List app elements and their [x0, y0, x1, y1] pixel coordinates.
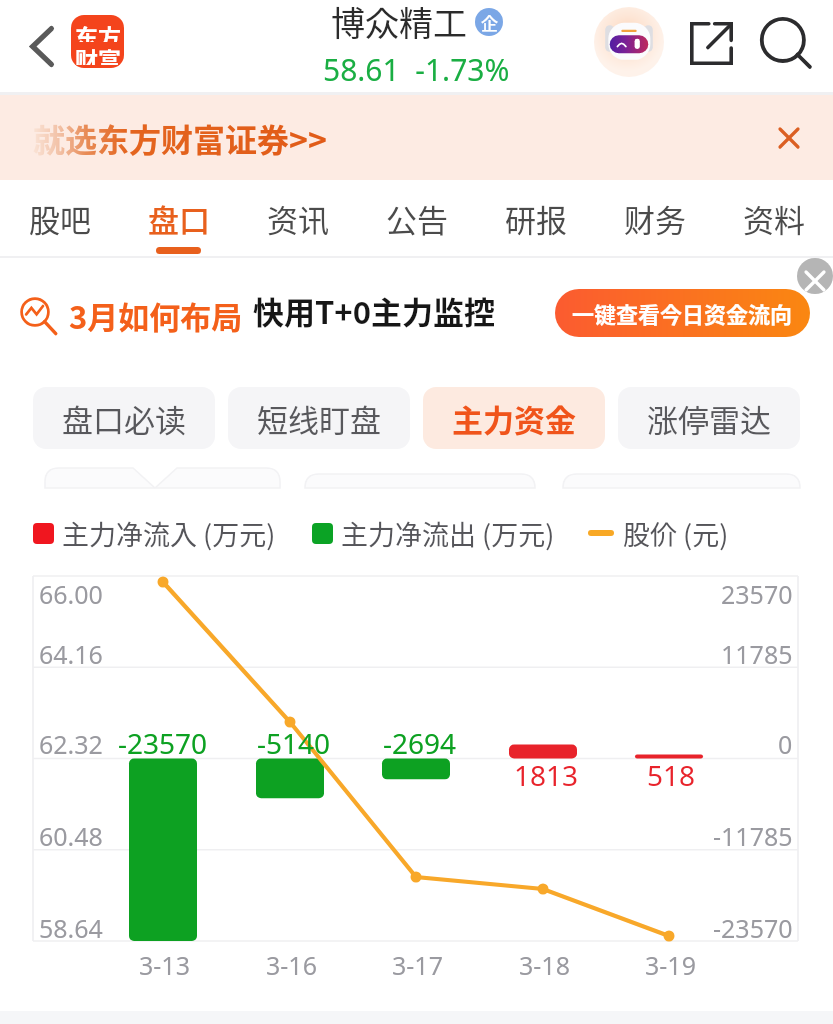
staticText: 3-17	[392, 948, 443, 982]
staticText: 盘口必读	[62, 396, 186, 441]
button[interactable]: East Money	[71, 15, 124, 68]
staticText: 涨停雷达	[647, 396, 771, 441]
staticText: 518	[647, 756, 696, 794]
staticText: 3-13	[139, 948, 190, 982]
staticText: 主力资金	[452, 396, 576, 441]
button[interactable]: 资讯	[238, 180, 357, 258]
staticText: 1813	[514, 756, 579, 794]
button[interactable]: 公告	[357, 180, 476, 258]
button[interactable]: 一键查看今日资金流向	[555, 289, 810, 337]
staticText: 股吧	[29, 196, 91, 241]
staticText: 3-18	[519, 948, 570, 982]
button[interactable]: 财务	[595, 180, 714, 258]
button[interactable]: 涨停雷达	[618, 387, 800, 449]
button[interactable]: 研报	[476, 180, 595, 258]
staticText: 东方	[75, 19, 121, 42]
staticText: 资讯	[267, 196, 329, 241]
staticText: 58.61 -1.73%	[323, 49, 510, 89]
staticText: 58.64	[39, 911, 103, 945]
button[interactable]: 股吧	[0, 180, 119, 258]
staticText: 快用T+0主力监控	[253, 288, 495, 333]
staticText: 财务	[624, 196, 686, 241]
staticText: 3月如何布局	[69, 293, 243, 338]
button[interactable]: Back	[14, 18, 70, 74]
staticText: -11785	[713, 819, 793, 853]
button[interactable]: AI assistant	[591, 4, 667, 80]
staticText: 就选东方财富证券>>	[33, 115, 327, 161]
staticText: 资料	[743, 196, 805, 241]
staticText: 一键查看今日资金流向	[572, 297, 793, 329]
button[interactable]: 就选东方财富证券>>	[0, 95, 833, 180]
button[interactable]: 主力资金	[423, 387, 605, 449]
staticText: 公告	[386, 196, 448, 241]
staticText: 研报	[505, 196, 567, 241]
staticText: 短线盯盘	[257, 396, 381, 441]
button[interactable]: Search	[751, 6, 823, 78]
staticText: 11785	[721, 637, 793, 671]
staticText: 62.32	[39, 727, 103, 761]
button[interactable]: 盘口必读	[33, 387, 215, 449]
staticText: 3-16	[266, 948, 317, 982]
button[interactable]: 短线盯盘	[228, 387, 410, 449]
staticText: -2694	[383, 724, 457, 762]
button[interactable]: Close banner	[761, 110, 817, 166]
button[interactable]: Close promo	[797, 258, 833, 294]
staticText: 主力净流出 (万元)	[341, 514, 555, 553]
staticText: 64.16	[39, 637, 103, 671]
staticText: -23570	[118, 724, 208, 762]
staticText: 60.48	[39, 819, 103, 853]
staticText: 66.00	[39, 577, 103, 611]
staticText: 财富	[75, 42, 121, 65]
staticText: 3-19	[645, 948, 696, 982]
staticText: 企	[481, 10, 498, 35]
button[interactable]: Share	[675, 7, 747, 79]
button[interactable]: 盘口	[119, 180, 238, 258]
button[interactable]: 资料	[714, 180, 833, 258]
staticText: 23570	[721, 577, 793, 611]
staticText: 主力净流入 (万元)	[62, 514, 276, 553]
staticText: 股价 (元)	[623, 514, 729, 553]
staticText: 博众精工	[331, 0, 467, 46]
staticText: -23570	[713, 911, 793, 945]
staticText: 0	[778, 727, 793, 761]
staticText: 盘口	[148, 196, 210, 241]
staticText: -5140	[257, 724, 331, 762]
